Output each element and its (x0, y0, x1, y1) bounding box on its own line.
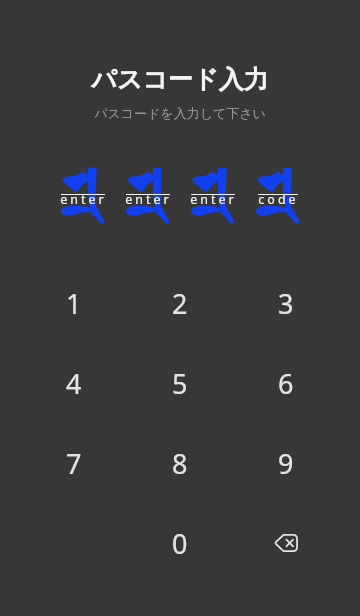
staticText: enter (190, 191, 237, 208)
button[interactable]: 2 (127, 263, 233, 343)
button[interactable]: 1 (21, 263, 127, 343)
button[interactable]: 4 (21, 343, 127, 423)
staticText: 0 (172, 525, 188, 562)
button[interactable]: 5 (127, 343, 233, 423)
staticText: enter (125, 191, 172, 208)
button[interactable]: 0 (127, 503, 233, 583)
staticText: 8 (172, 445, 188, 482)
other: Delete (274, 534, 298, 552)
staticText: 5 (172, 365, 188, 402)
staticText: パスコード入力 (91, 64, 269, 95)
staticText: 4 (66, 365, 82, 402)
staticText: code (258, 191, 299, 208)
button[interactable]: 3 (233, 263, 339, 343)
staticText: 9 (278, 445, 294, 482)
staticText: 2 (172, 285, 188, 322)
staticText: enter (60, 191, 107, 208)
button[interactable]: 6 (233, 343, 339, 423)
staticText: 7 (66, 445, 82, 482)
staticText: 6 (278, 365, 294, 402)
staticText: 3 (278, 285, 294, 322)
button[interactable]: 8 (127, 423, 233, 503)
button[interactable]: Delete (233, 503, 339, 583)
button[interactable]: 9 (233, 423, 339, 503)
staticText: パスコードを入力して下さい (94, 105, 266, 121)
button[interactable]: 7 (21, 423, 127, 503)
staticText: 1 (66, 285, 82, 322)
